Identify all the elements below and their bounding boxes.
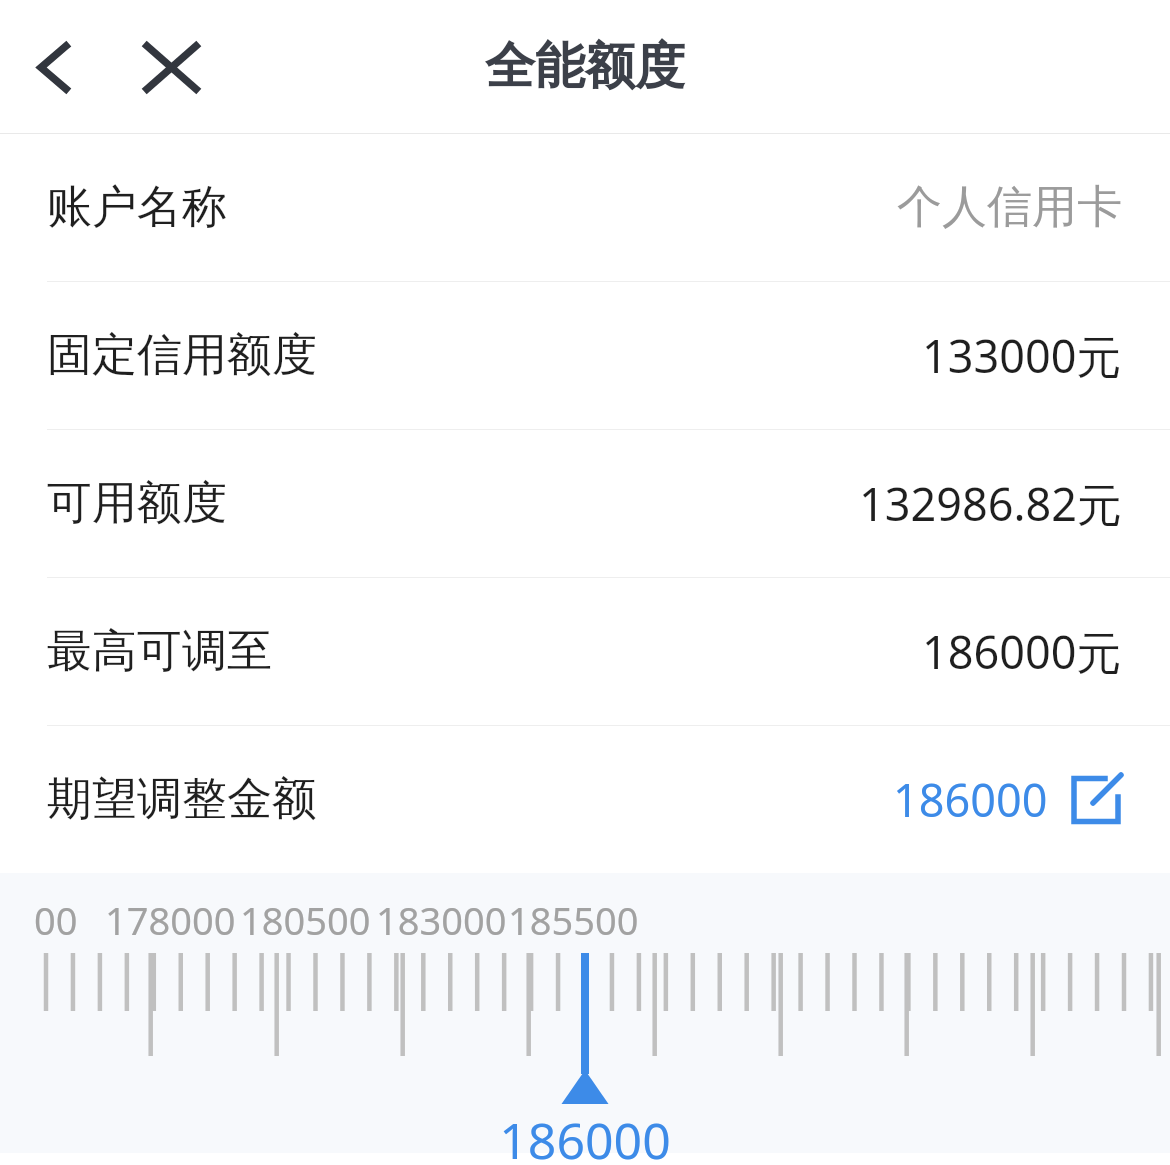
- staticText: 185500: [508, 894, 639, 946]
- button[interactable]: 可用额度: [0, 430, 1170, 577]
- button[interactable]: Edit amount: [1070, 774, 1122, 826]
- staticText: 00: [34, 894, 78, 946]
- staticText: 186000: [893, 769, 1048, 830]
- staticText: 180500: [240, 894, 371, 946]
- button[interactable]: 固定信用额度: [0, 282, 1170, 429]
- button[interactable]: Back: [10, 24, 96, 110]
- staticText: 可用额度: [47, 475, 227, 532]
- staticText: 个人信用卡: [897, 179, 1122, 236]
- button[interactable]: 账户名称: [0, 134, 1170, 281]
- staticText: 132986.82元: [859, 473, 1122, 534]
- staticText: 账户名称: [47, 179, 227, 236]
- button[interactable]: 期望调整金额: [0, 726, 1170, 873]
- staticText: 最高可调至: [47, 623, 272, 680]
- staticText: 133000元: [922, 325, 1122, 386]
- staticText: 全能额度: [485, 35, 685, 98]
- staticText: 期望调整金额: [47, 771, 317, 828]
- staticText: 178000: [105, 894, 236, 946]
- button[interactable]: Close: [128, 24, 214, 110]
- staticText: 186000元: [922, 621, 1122, 682]
- staticText: 固定信用额度: [47, 327, 317, 384]
- staticText: 186000: [0, 1106, 1170, 1165]
- staticText: 183000: [376, 894, 507, 946]
- button[interactable]: 最高可调至: [0, 578, 1170, 725]
